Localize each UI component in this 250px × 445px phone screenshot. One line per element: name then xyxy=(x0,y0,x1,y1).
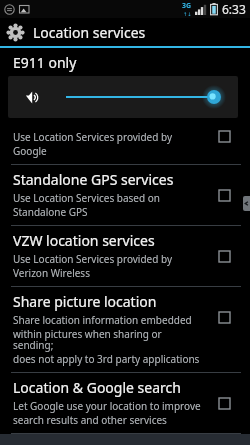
staticText: Share picture location xyxy=(13,292,157,311)
other: Settings xyxy=(7,24,24,41)
staticText: Use Location Services based on xyxy=(13,191,160,205)
staticText: Standalone GPS services xyxy=(13,170,174,189)
staticText: VZW location services xyxy=(13,231,155,250)
staticText: Use Location Services provided by xyxy=(13,252,172,266)
staticText: Standalone GPS xyxy=(13,205,88,219)
button[interactable]: Toggle Standalone GPS services xyxy=(219,190,230,201)
staticText: Location & Google search xyxy=(13,378,181,397)
button[interactable]: Toggle setting xyxy=(219,131,230,142)
staticText: E911 only xyxy=(13,53,77,72)
staticText: ↑↓ xyxy=(183,11,192,17)
staticText: Use Location Services provided by xyxy=(13,130,172,144)
staticText: 6:33 xyxy=(222,1,246,17)
button[interactable]: Share picture location xyxy=(0,287,250,372)
staticText: search results and other services xyxy=(13,413,167,427)
staticText: Verizon Wireless xyxy=(13,266,90,280)
button[interactable]: Toggle Share picture location xyxy=(219,312,230,323)
button[interactable]: Toggle Location & Google search xyxy=(219,398,230,409)
button[interactable]: Toggle VZW location services xyxy=(219,251,230,262)
staticText: within pictures when sharing or sending; xyxy=(13,327,202,352)
staticText: Let Google use your location to improve xyxy=(13,399,201,413)
staticText: Google xyxy=(13,144,47,158)
button[interactable]: E911 only xyxy=(0,48,250,88)
staticText: does not apply to 3rd party applications xyxy=(13,352,200,366)
button[interactable]: Standalone GPS services xyxy=(0,165,250,225)
other: Volume xyxy=(25,90,40,105)
staticText: Location services xyxy=(33,23,146,42)
button[interactable]: VZW location services xyxy=(0,226,250,286)
button[interactable]: Settings xyxy=(0,18,250,46)
staticText: E911 location can not be turned off on a… xyxy=(13,74,213,88)
staticText: Share location information embedded xyxy=(13,313,192,327)
button[interactable]: Open navigation drawer xyxy=(243,196,250,211)
button[interactable]: Use Location Services provided by xyxy=(0,130,250,164)
staticText: 3G xyxy=(182,1,192,11)
button[interactable]: Location & Google search xyxy=(0,373,250,433)
button[interactable]: Volume xyxy=(8,76,238,118)
